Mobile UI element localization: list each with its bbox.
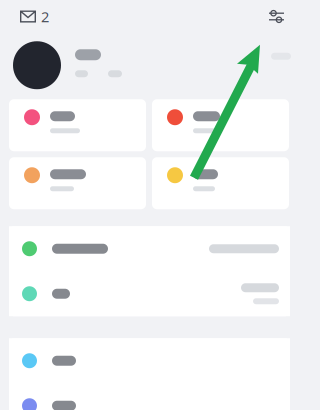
button[interactable] bbox=[152, 99, 289, 151]
button[interactable] bbox=[9, 157, 146, 209]
staticText: 2 bbox=[41, 7, 49, 26]
button[interactable] bbox=[9, 99, 146, 151]
button[interactable] bbox=[0, 31, 320, 99]
button[interactable]: Messages, 2 unread bbox=[14, 2, 55, 31]
button[interactable] bbox=[9, 226, 290, 271]
button[interactable] bbox=[9, 383, 290, 410]
button[interactable] bbox=[152, 157, 289, 209]
button[interactable] bbox=[9, 271, 290, 316]
button[interactable] bbox=[9, 338, 290, 383]
button[interactable]: Filter bbox=[263, 5, 290, 27]
